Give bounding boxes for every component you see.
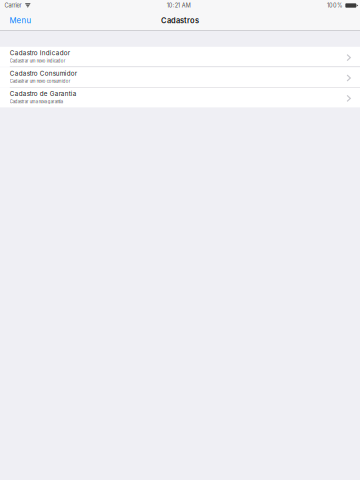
staticText: Cadastro de Garantia — [10, 90, 77, 98]
staticText: Cadastros — [161, 16, 199, 25]
staticText: 100% — [327, 2, 342, 9]
staticText: Cadastro Consumidor — [10, 70, 77, 77]
staticText: Carrier — [5, 2, 22, 9]
staticText: 10:21 AM — [167, 2, 191, 9]
staticText: Cadastrar uma nova garantia — [10, 99, 63, 104]
button[interactable]: Cadastro de Garantia — [0, 88, 360, 107]
button[interactable]: Cadastro Consumidor — [0, 67, 360, 87]
button[interactable]: Cadastro Indicador — [0, 47, 360, 67]
staticText: Cadastrar um novo indicador — [10, 58, 66, 63]
staticText: Cadastro Indicador — [10, 49, 70, 57]
staticText: Menu — [9, 16, 31, 25]
button[interactable]: Menu — [5, 13, 35, 28]
staticText: Cadastrar um novo consumidor — [10, 79, 71, 84]
